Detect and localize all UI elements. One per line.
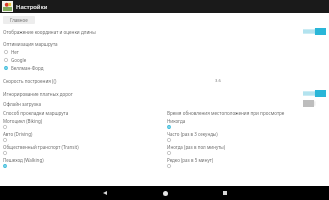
staticText: Отображение координат и оценки длины bbox=[3, 29, 96, 35]
button[interactable]: Google bbox=[4, 57, 329, 63]
button[interactable]: Редко (раз в 5 минут) bbox=[167, 157, 329, 168]
staticText: Часто (раз в 3 секунды) bbox=[167, 131, 218, 137]
button[interactable]: Общественный транспорт (Transit) bbox=[3, 144, 164, 155]
button[interactable]: Отображение координат и оценки длины bbox=[3, 28, 326, 35]
staticText: Общественный транспорт (Transit) bbox=[3, 144, 79, 150]
staticText: Нет bbox=[11, 49, 19, 55]
button[interactable]: Игнорирование платных дорог bbox=[3, 90, 326, 97]
staticText: Время обновления местоположения при прос… bbox=[167, 110, 285, 116]
button[interactable]: Off bbox=[303, 100, 326, 107]
button[interactable]: Recents bbox=[195, 186, 255, 200]
button[interactable]: Back bbox=[75, 186, 135, 200]
button[interactable]: Главное bbox=[3, 16, 35, 24]
staticText: Способ прокладки маршрута bbox=[3, 110, 69, 116]
staticText: Настройки bbox=[16, 3, 48, 11]
staticText: Мотоцикл (Biking) bbox=[3, 118, 43, 124]
button[interactable]: App icon bbox=[2, 1, 13, 12]
staticText: Оптимизация маршрута bbox=[3, 41, 58, 47]
staticText: Редко (раз в 5 минут) bbox=[167, 157, 214, 163]
button[interactable]: On bbox=[303, 28, 326, 35]
button[interactable]: Home bbox=[135, 186, 195, 200]
staticText: Авто (Driving) bbox=[3, 131, 33, 137]
staticText: Иногда (раз в пол минуты) bbox=[167, 144, 226, 150]
button[interactable]: Авто (Driving) bbox=[3, 131, 164, 142]
staticText: 3.6 bbox=[215, 78, 221, 84]
button[interactable]: Офлайн загрузка bbox=[3, 100, 326, 107]
button[interactable]: Нет bbox=[4, 49, 329, 55]
staticText: Скорость построения (() bbox=[3, 78, 57, 84]
button[interactable]: Пешеход (Walking) bbox=[3, 157, 164, 168]
staticText: Беллман-Форд bbox=[11, 65, 44, 71]
button[interactable]: On bbox=[303, 90, 326, 97]
button[interactable]: Часто (раз в 3 секунды) bbox=[167, 131, 329, 142]
staticText: Никогда bbox=[167, 118, 186, 124]
staticText: Главное bbox=[10, 17, 28, 23]
button[interactable]: Иногда (раз в пол минуты) bbox=[167, 144, 329, 155]
button[interactable]: Мотоцикл (Biking) bbox=[3, 118, 164, 129]
staticText: Google bbox=[11, 57, 27, 63]
button[interactable]: Беллман-Форд bbox=[4, 65, 329, 71]
staticText: Офлайн загрузка bbox=[3, 101, 41, 107]
staticText: Пешеход (Walking) bbox=[3, 157, 44, 163]
button[interactable]: Никогда bbox=[167, 118, 329, 129]
staticText: Игнорирование платных дорог bbox=[3, 91, 73, 97]
